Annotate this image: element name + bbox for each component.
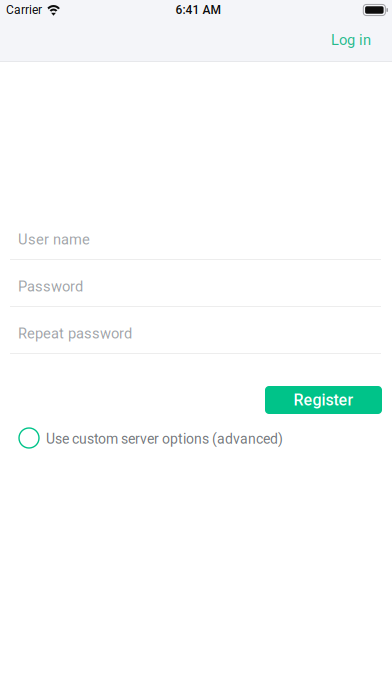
staticText: Repeat password [18, 325, 132, 342]
button[interactable]: Log in [321, 24, 381, 58]
staticText: Register [293, 391, 353, 409]
staticText: Carrier [6, 3, 42, 17]
staticText: Use custom server options (advanced) [46, 431, 283, 447]
button[interactable]: Register [265, 386, 382, 414]
staticText: 6:41 AM [175, 3, 220, 17]
staticText: Password [18, 278, 83, 295]
button[interactable]: Use custom server options (advanced) [0, 414, 392, 458]
staticText: Log in [331, 31, 371, 49]
staticText: User name [18, 231, 90, 248]
